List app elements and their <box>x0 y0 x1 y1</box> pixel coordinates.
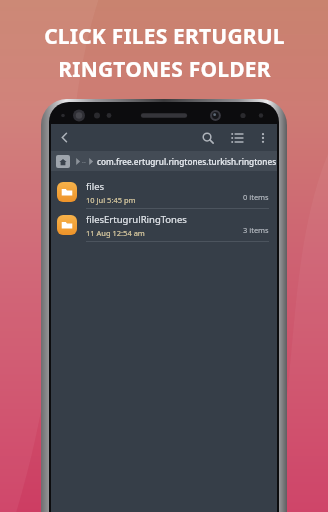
staticText: files <box>86 180 105 193</box>
staticText: 10 Jul 5:45 pm <box>86 195 136 205</box>
staticText: CLICK FILES ERTUGRUL <box>44 22 285 51</box>
staticText: com.free.ertugrul.ringtones.turkish.ring… <box>97 156 277 167</box>
button[interactable]: Back <box>51 124 78 151</box>
staticText: filesErtugrulRingTones <box>86 213 187 226</box>
button[interactable]: files <box>51 176 277 209</box>
staticText: RINGTONES FOLDER <box>58 55 271 84</box>
button[interactable]: .. <box>51 151 277 171</box>
staticText: .. <box>82 156 86 166</box>
button[interactable]: Search <box>195 125 221 151</box>
staticText: 0 items <box>243 192 269 202</box>
button[interactable]: filesErtugrulRingTones <box>51 209 277 242</box>
staticText: 11 Aug 12:54 am <box>86 228 145 238</box>
button[interactable]: View options <box>224 125 250 151</box>
staticText: 3 items <box>243 225 269 235</box>
button[interactable]: More options <box>251 126 275 150</box>
